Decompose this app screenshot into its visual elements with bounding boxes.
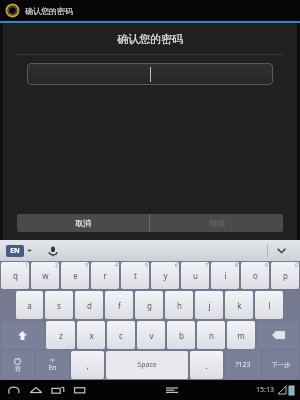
staticText: l <box>268 300 271 311</box>
button[interactable]: i <box>211 262 239 289</box>
button[interactable]: k <box>225 291 253 319</box>
staticText: o <box>253 270 258 281</box>
staticText: . <box>205 360 208 371</box>
button[interactable]: , <box>71 351 104 379</box>
button[interactable]: Language <box>36 351 69 379</box>
staticText: 8 <box>235 262 238 269</box>
button[interactable]: Home <box>28 382 44 398</box>
button[interactable] <box>27 63 273 85</box>
staticText: 0 <box>295 262 298 269</box>
staticText: 确认您的密码 <box>3 32 297 46</box>
button[interactable]: 继续 <box>150 214 283 232</box>
staticText: 确认您的密码 <box>25 6 73 16</box>
staticText: m <box>237 330 245 341</box>
staticText: Space <box>137 360 157 370</box>
staticText: c <box>119 330 123 341</box>
staticText: 15:13 <box>256 385 274 395</box>
staticText: d <box>87 300 92 311</box>
staticText: 继续 <box>209 218 225 228</box>
button[interactable]: h <box>165 291 193 319</box>
button[interactable]: y <box>151 262 179 289</box>
button[interactable]: g <box>135 291 163 319</box>
button[interactable]: v <box>137 321 165 349</box>
button[interactable]: 取消 <box>17 214 149 232</box>
staticText: 9 <box>265 262 268 269</box>
button[interactable]: t <box>121 262 149 289</box>
staticText: 2 <box>55 262 58 269</box>
button[interactable]: EN <box>10 246 20 256</box>
staticText: j <box>208 300 211 311</box>
staticText: 4 <box>115 262 118 269</box>
button[interactable]: b <box>167 321 195 349</box>
staticText: En <box>48 363 57 373</box>
staticText: e <box>73 270 78 281</box>
button[interactable]: n <box>197 321 225 349</box>
staticText: x <box>89 330 94 341</box>
button[interactable]: o <box>241 262 269 289</box>
staticText: 7 <box>205 262 208 269</box>
staticText: p <box>283 270 288 281</box>
staticText: v <box>149 330 154 341</box>
staticText: 6 <box>175 262 178 269</box>
button[interactable]: Hide keyboard <box>72 382 88 398</box>
staticText: h <box>177 300 182 311</box>
button[interactable]: w <box>31 262 59 289</box>
staticText: 5 <box>145 262 148 269</box>
staticText: s <box>57 300 61 311</box>
staticText: g <box>147 300 152 311</box>
button[interactable]: q <box>1 262 29 289</box>
button[interactable]: Backspace <box>257 321 299 349</box>
other: Language menu <box>27 248 32 253</box>
staticText: ?123 <box>235 360 251 370</box>
button[interactable]: r <box>91 262 119 289</box>
button[interactable]: d <box>75 291 103 319</box>
staticText: q <box>13 270 18 281</box>
staticText: EN <box>10 246 20 256</box>
staticText: 下一步 <box>272 361 290 369</box>
button[interactable]: Shift <box>1 321 44 349</box>
other: Menu <box>166 385 178 395</box>
button[interactable]: j <box>195 291 223 319</box>
button[interactable]: e <box>61 262 89 289</box>
button[interactable]: Symbols and numbers <box>225 351 261 379</box>
staticText: f <box>118 300 121 311</box>
button[interactable]: p <box>271 262 299 289</box>
button[interactable]: x <box>77 321 105 349</box>
button[interactable]: Back <box>6 382 22 398</box>
staticText: r <box>103 270 107 281</box>
button[interactable]: c <box>107 321 135 349</box>
staticText: 3 <box>85 262 88 269</box>
button[interactable]: a <box>16 291 43 319</box>
button[interactable]: Voice input <box>46 244 60 258</box>
staticText: t <box>134 270 137 281</box>
button[interactable]: l <box>255 291 283 319</box>
staticText: y <box>163 270 168 281</box>
staticText: k <box>237 300 242 311</box>
button[interactable]: . <box>190 351 223 379</box>
button[interactable]: Hide keyboard <box>268 240 294 261</box>
button[interactable]: f <box>105 291 133 319</box>
button[interactable]: z <box>46 321 75 349</box>
button[interactable]: Recent apps <box>50 382 66 398</box>
button[interactable]: Space <box>106 351 188 379</box>
staticText: b <box>179 330 184 341</box>
staticText: n <box>209 330 214 341</box>
button[interactable]: Symbols <box>1 351 34 379</box>
staticText: 取消 <box>75 218 91 228</box>
staticText: a <box>27 300 32 311</box>
staticText: 中 <box>50 357 55 363</box>
staticText: , <box>86 360 89 371</box>
staticText: z <box>59 330 63 341</box>
button[interactable]: u <box>181 262 209 289</box>
staticText: u <box>193 270 198 281</box>
button[interactable]: Next <box>263 351 299 379</box>
button[interactable]: s <box>45 291 73 319</box>
button[interactable]: m <box>227 321 255 349</box>
staticText: 1 <box>25 262 28 269</box>
staticText: 符 <box>15 365 21 373</box>
staticText: i <box>224 270 227 281</box>
staticText: w <box>42 270 49 281</box>
